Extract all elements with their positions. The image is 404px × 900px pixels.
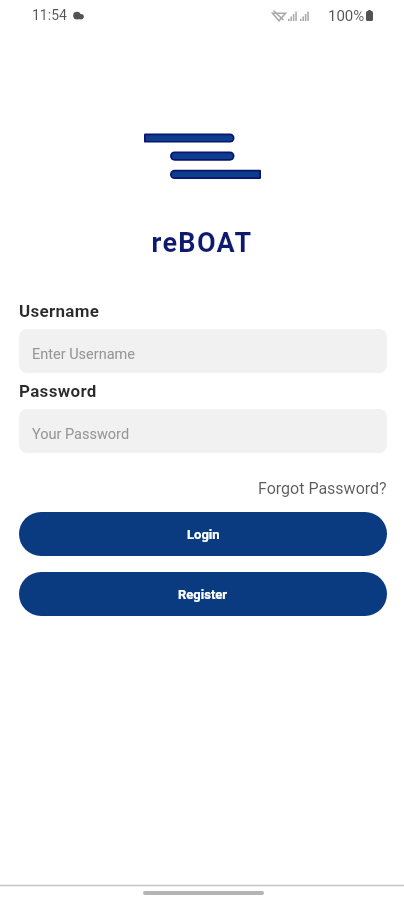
staticText: Your Password: [32, 426, 130, 443]
button[interactable]: Login: [19, 512, 387, 556]
staticText: reBOAT: [0, 227, 404, 259]
staticText: Register: [178, 587, 228, 602]
button[interactable]: Your Password: [19, 409, 387, 453]
staticText: Password: [19, 381, 97, 401]
button[interactable]: Forgot Password?: [258, 477, 387, 500]
staticText: 11:54: [32, 7, 67, 23]
staticText: Username: [19, 301, 100, 321]
button[interactable]: Register: [19, 572, 387, 616]
other: reBOAT logo: [144, 133, 262, 180]
staticText: 100%: [328, 7, 365, 25]
staticText: Login: [187, 527, 220, 542]
staticText: Enter Username: [32, 346, 135, 363]
button[interactable]: Enter Username: [19, 329, 387, 373]
